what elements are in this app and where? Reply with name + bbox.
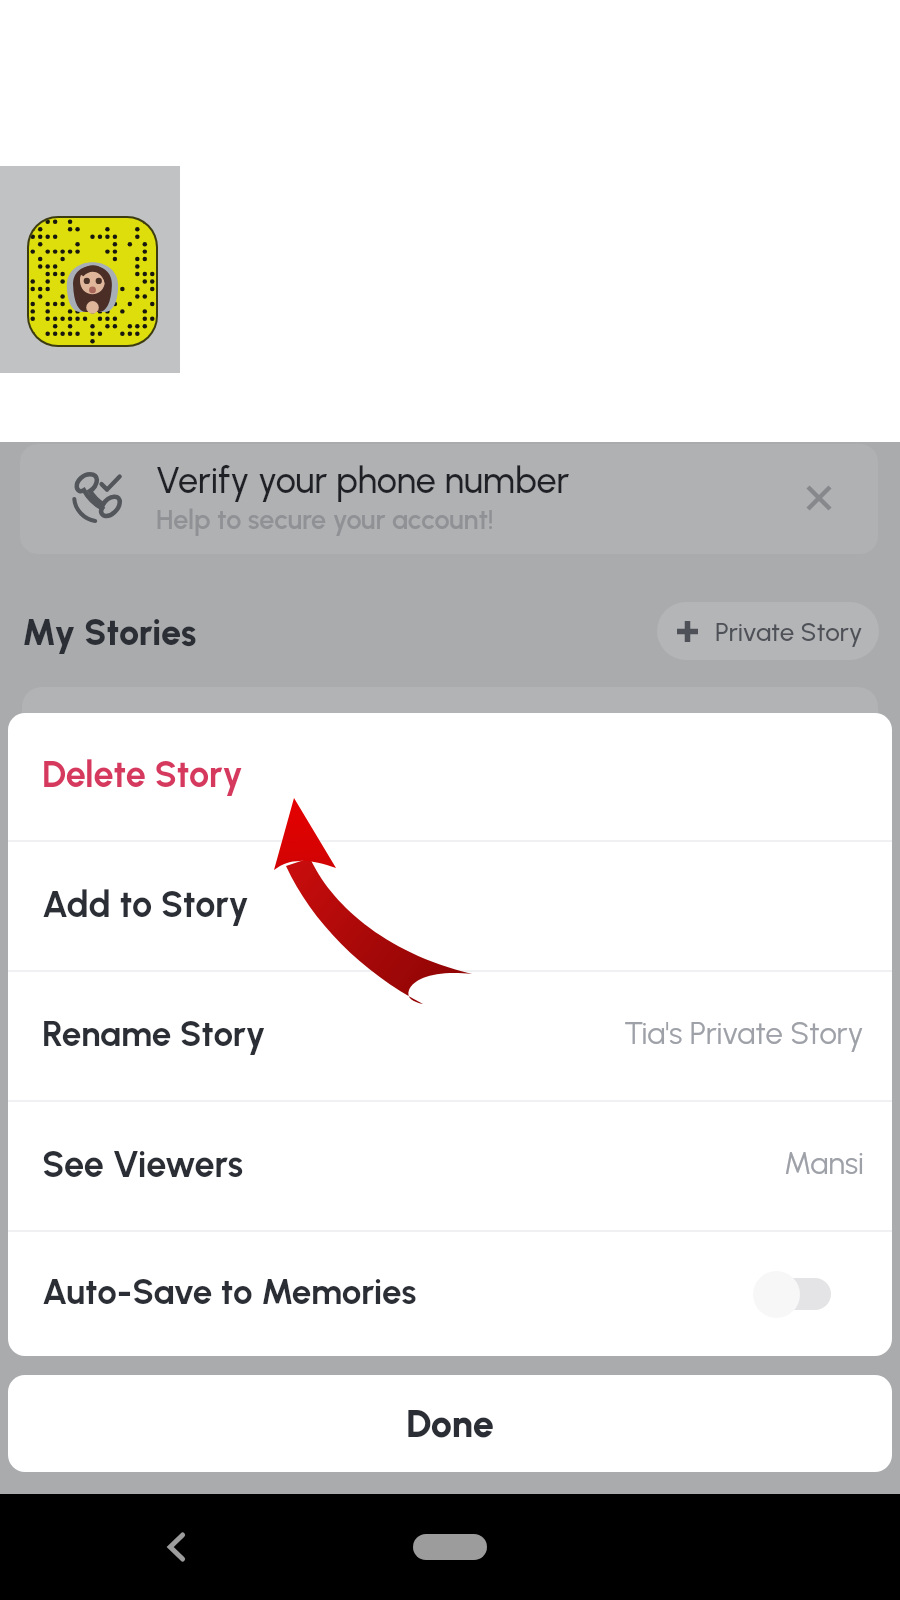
staticText: Private Story — [715, 616, 863, 647]
staticText: Rename Story — [42, 1013, 266, 1055]
button[interactable]: Auto-Save to Memories — [8, 1232, 892, 1356]
button[interactable]: Delete Story — [8, 713, 892, 840]
other: Home — [413, 1534, 487, 1560]
staticText: Auto-Save to Memories — [42, 1271, 417, 1313]
button[interactable]: Done — [8, 1375, 892, 1472]
staticText: Mansi — [784, 1145, 864, 1182]
staticText: See Viewers — [42, 1143, 244, 1186]
other: Back — [157, 1527, 197, 1567]
button[interactable]: Add to Story — [8, 842, 892, 970]
staticText: Tia's Private Story — [624, 1015, 864, 1052]
staticText: Verify your phone number — [156, 459, 570, 502]
button[interactable]: Dismiss — [794, 473, 844, 523]
staticText: My Stories — [22, 611, 197, 654]
staticText: Help to secure your account! — [156, 503, 494, 535]
button[interactable]: Verify your phone number — [20, 444, 878, 554]
button[interactable]: Private Story — [657, 602, 879, 660]
staticText: Delete Story — [42, 753, 243, 796]
button[interactable]: See Viewers — [8, 1102, 892, 1230]
staticText: Add to Story — [42, 883, 249, 926]
staticText: Done — [406, 1401, 494, 1447]
button[interactable]: Rename Story — [8, 972, 892, 1100]
